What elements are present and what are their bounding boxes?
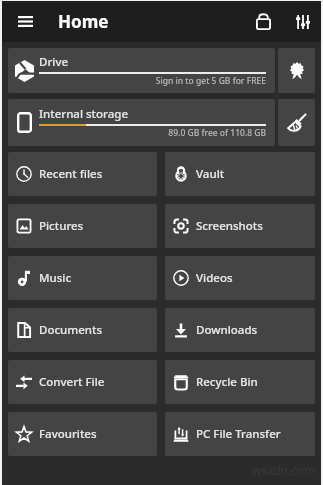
button[interactable]: Vault — [165, 152, 315, 196]
button[interactable]: Music — [8, 256, 157, 300]
button[interactable]: Screenshots — [165, 204, 315, 248]
staticText: Recent files — [39, 166, 103, 182]
staticText: Pictures — [39, 218, 84, 234]
button[interactable]: Menu — [9, 5, 42, 38]
staticText: Music — [39, 270, 72, 286]
staticText: Downloads — [196, 322, 258, 338]
staticText: Favourites — [39, 426, 97, 442]
button[interactable]: Recycle Bin — [165, 360, 315, 404]
staticText: Sign in to get 5 GB for FREE — [39, 75, 266, 87]
button[interactable]: Favourites — [8, 412, 157, 456]
staticText: Recycle Bin — [196, 374, 258, 390]
button[interactable]: Pictures — [8, 204, 157, 248]
button[interactable]: Clean storage — [278, 99, 315, 146]
button[interactable]: Drive upgrade — [278, 48, 315, 93]
button[interactable]: PC File Transfer — [165, 412, 315, 456]
button[interactable]: Settings — [286, 5, 319, 38]
staticText: Videos — [196, 270, 233, 286]
staticText: 89.0 GB free of 110.8 GB — [39, 127, 266, 139]
button[interactable]: Downloads — [165, 308, 315, 352]
staticText: wsxdn.com — [252, 462, 316, 478]
staticText: Screenshots — [196, 218, 263, 234]
button[interactable]: Store — [247, 5, 280, 38]
button[interactable]: Documents — [8, 308, 157, 352]
staticText: Drive — [39, 54, 69, 70]
button[interactable]: Drive — [8, 48, 275, 93]
staticText: Vault — [196, 166, 225, 182]
staticText: Documents — [39, 322, 102, 338]
staticText: PC File Transfer — [196, 426, 281, 442]
button[interactable]: Videos — [165, 256, 315, 300]
button[interactable]: Convert File — [8, 360, 157, 404]
staticText: Home — [58, 10, 109, 33]
staticText: Internal storage — [39, 106, 128, 122]
button[interactable]: Internal storage — [8, 99, 275, 146]
button[interactable]: Recent files — [8, 152, 157, 196]
staticText: Convert File — [39, 374, 105, 390]
